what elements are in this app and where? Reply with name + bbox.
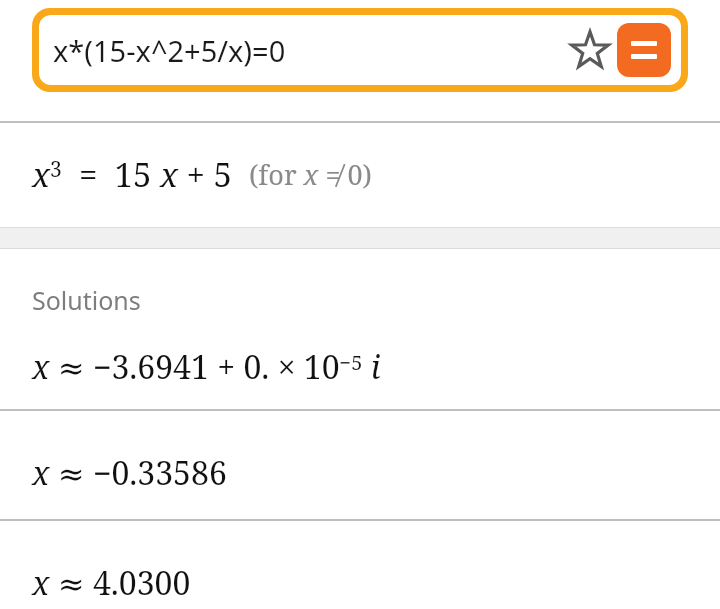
button[interactable]: x ≈ −0.33586 <box>0 411 720 519</box>
button[interactable]: x ≈ 4.0300 <box>0 521 720 609</box>
staticText: x ≈ 4.0300 <box>32 561 191 605</box>
staticText: Solutions <box>32 283 141 317</box>
staticText: x*(15-x^2+5/x)=0 <box>53 31 563 70</box>
button[interactable]: Compute <box>617 23 671 77</box>
button[interactable]: Add to favorites <box>563 23 617 77</box>
staticText: x3 = 15 x + 5 <box>32 152 233 197</box>
button[interactable]: x3 = 15 x + 5 <box>0 100 720 228</box>
staticText: x ≈ −0.33586 <box>32 451 227 495</box>
button[interactable]: Solutions <box>0 249 720 409</box>
staticText: x ≈ −3.6941 + 0. × 10−5 i <box>32 345 381 389</box>
button[interactable]: x*(15-x^2+5/x)=0 <box>39 15 681 85</box>
staticText: (for x ≠ 0) <box>249 156 372 193</box>
